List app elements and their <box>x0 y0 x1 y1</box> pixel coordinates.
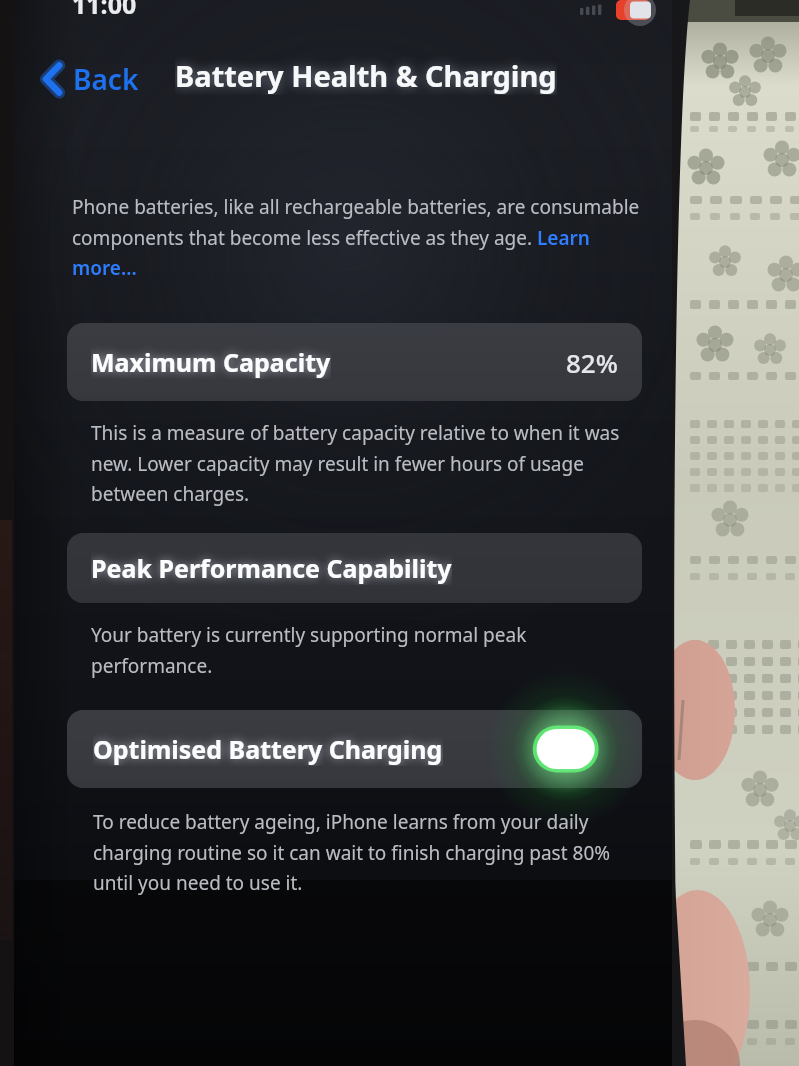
button[interactable]: Maximum Capacity <box>67 323 642 401</box>
staticText: Battery Health & Charging <box>175 56 557 95</box>
staticText: Phone batteries, like all rechargeable b… <box>72 194 647 280</box>
staticText: Maximum Capacity <box>91 345 331 379</box>
staticText: Optimised Battery Charging <box>93 732 443 766</box>
button[interactable]: Optimised Battery Charging <box>67 710 642 788</box>
staticText: Your battery is currently supporting nor… <box>91 622 640 678</box>
button[interactable]: Peak Performance Capability <box>67 533 642 603</box>
staticText: Peak Performance Capability <box>91 551 452 585</box>
staticText: Optimised Battery Charging <box>93 732 443 766</box>
button[interactable]: Back <box>34 50 147 108</box>
staticText: Peak Performance Capability <box>91 551 452 585</box>
staticText: This is a measure of battery capacity re… <box>91 420 640 506</box>
staticText: Maximum Capacity <box>91 345 331 379</box>
staticText: 11:00 <box>72 0 137 21</box>
button[interactable]: Optimised Battery Charging toggle, on <box>514 710 624 788</box>
staticText: 82% <box>566 345 618 380</box>
staticText: Battery Health & Charging <box>175 56 557 95</box>
staticText: To reduce battery ageing, iPhone learns … <box>93 809 640 895</box>
staticText: Back <box>73 60 139 98</box>
